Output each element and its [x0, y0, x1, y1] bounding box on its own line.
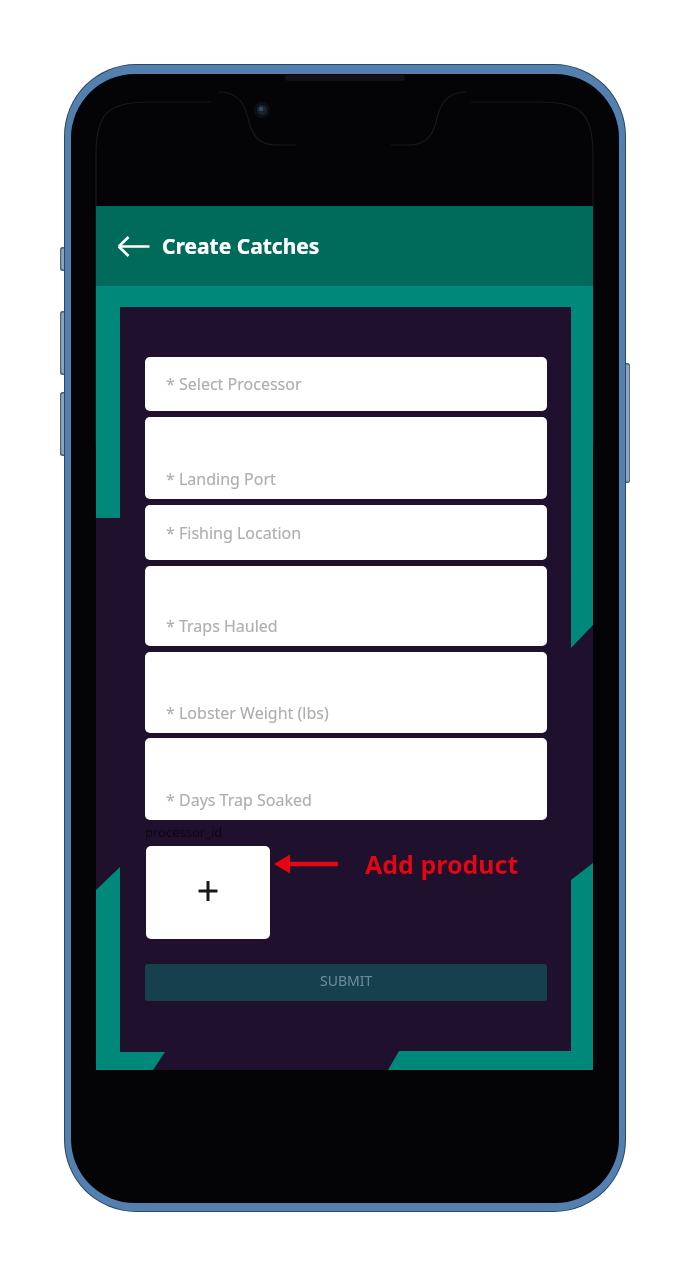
staticText: Add product: [365, 847, 519, 881]
button[interactable]: * Lobster Weight (lbs): [145, 652, 547, 733]
staticText: Create Catches: [162, 232, 320, 261]
staticText: SUBMIT: [320, 971, 373, 990]
button[interactable]: * Landing Port: [145, 417, 547, 499]
staticText: * Days Trap Soaked: [166, 789, 312, 811]
staticText: * Lobster Weight (lbs): [166, 702, 329, 724]
button[interactable]: * Days Trap Soaked: [145, 738, 547, 820]
button[interactable]: SUBMIT: [145, 964, 547, 1001]
staticText: * Fishing Location: [166, 522, 302, 544]
button[interactable]: * Select Processor: [145, 357, 547, 411]
button[interactable]: Back: [114, 226, 154, 266]
staticText: * Landing Port: [166, 468, 276, 490]
staticText: processor_id: [145, 823, 223, 841]
button[interactable]: * Fishing Location: [145, 505, 547, 560]
staticText: * Select Processor: [166, 373, 302, 395]
button[interactable]: * Traps Hauled: [145, 566, 547, 646]
staticText: * Traps Hauled: [166, 615, 278, 637]
button[interactable]: Add product: [146, 846, 270, 939]
